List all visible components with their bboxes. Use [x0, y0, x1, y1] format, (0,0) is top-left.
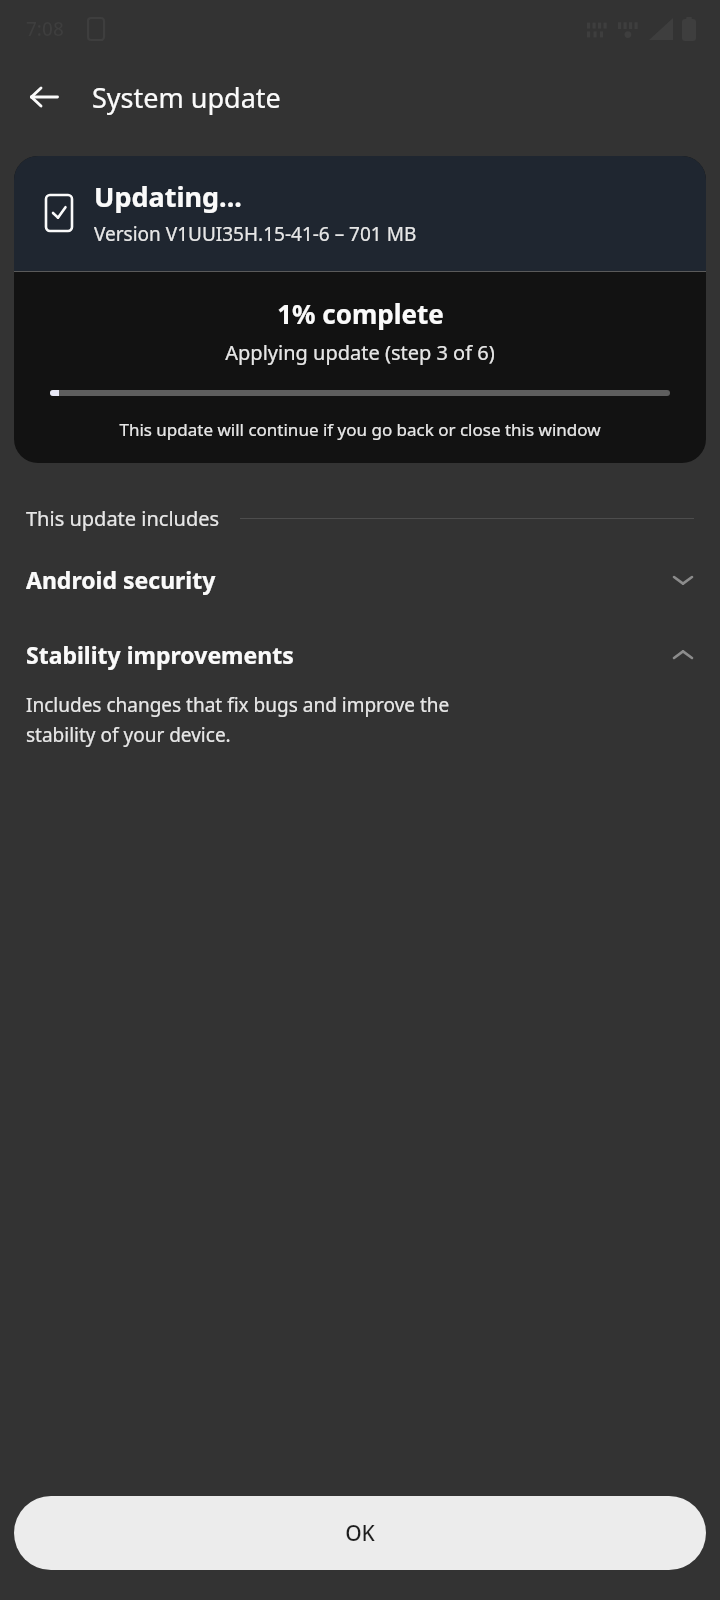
staticText: Applying update (step 3 of 6) [225, 339, 495, 366]
staticText: Updating... [94, 178, 242, 215]
staticText: Version V1UUI35H.15-41-6 – 701 MB [94, 221, 417, 247]
staticText: OK [345, 1519, 375, 1548]
staticText: This update will continue if you go back… [119, 418, 601, 441]
button[interactable]: Android security [0, 550, 720, 609]
staticText: 1% complete [277, 296, 444, 331]
staticText: Stability improvements [26, 639, 668, 670]
button[interactable]: Back [14, 67, 74, 127]
staticText: This update includes [26, 505, 220, 532]
staticText: Includes changes that fix bugs and impro… [26, 692, 450, 747]
staticText: System update [92, 79, 281, 116]
staticText: 7:08 [26, 16, 64, 42]
button[interactable]: OK [14, 1496, 706, 1570]
staticText: Android security [26, 564, 668, 595]
button[interactable]: Stability improvements [0, 625, 720, 684]
button[interactable]: Updating... [14, 156, 706, 463]
